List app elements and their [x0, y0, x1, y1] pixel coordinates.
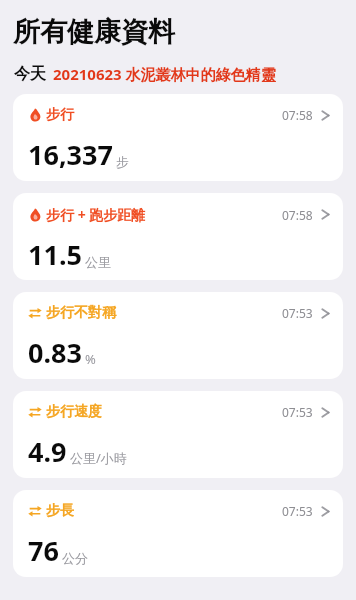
staticText: 4.9: [28, 433, 67, 470]
button[interactable]: 步行 + 跑步距離: [13, 193, 343, 280]
staticText: 20210623 水泥叢林中的綠色精靈: [53, 64, 276, 84]
staticText: 07:58: [282, 207, 313, 223]
staticText: 步行: [46, 106, 74, 124]
staticText: 步: [116, 154, 129, 170]
other: View details: [321, 306, 330, 321]
staticText: 步行不對稱: [46, 304, 116, 322]
staticText: 11.5: [28, 236, 82, 273]
staticText: 今天: [14, 64, 46, 84]
staticText: 步行速度: [46, 403, 102, 421]
staticText: 76: [28, 532, 59, 569]
staticText: %: [85, 350, 96, 368]
staticText: 16,337: [28, 136, 113, 173]
button[interactable]: 步行: [13, 94, 343, 181]
other: View details: [321, 207, 330, 222]
other: View details: [321, 108, 330, 123]
button[interactable]: 步行不對稱: [13, 292, 343, 379]
staticText: 07:53: [282, 404, 313, 420]
button[interactable]: 步行速度: [13, 391, 343, 478]
staticText: 公里: [85, 254, 111, 270]
staticText: 步長: [46, 502, 74, 520]
staticText: 步行 + 跑步距離: [46, 205, 146, 224]
other: View details: [321, 405, 330, 420]
staticText: 07:58: [282, 107, 313, 123]
staticText: 07:53: [282, 503, 313, 519]
other: View details: [321, 504, 330, 519]
staticText: 07:53: [282, 305, 313, 321]
staticText: 公里/小時: [70, 449, 127, 467]
staticText: 0.83: [28, 334, 82, 371]
button[interactable]: 步長: [13, 490, 343, 577]
staticText: 公分: [62, 550, 88, 566]
staticText: 所有健康資料: [13, 15, 175, 49]
